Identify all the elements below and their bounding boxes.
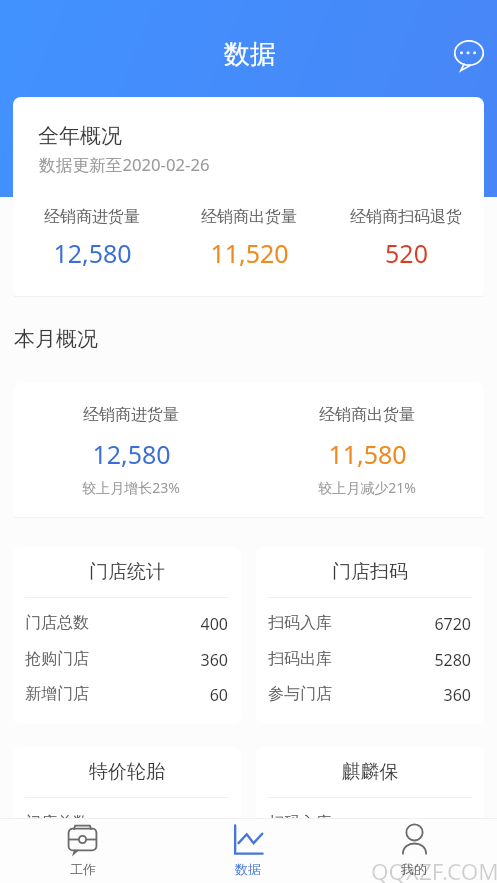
staticText: 全年概况 bbox=[38, 123, 122, 149]
staticText: 11,520 bbox=[210, 236, 289, 270]
staticText: 工作 bbox=[70, 861, 96, 877]
staticText: 数据 bbox=[235, 861, 261, 877]
staticText: 5280 bbox=[256, 849, 471, 871]
staticText: 抢购门店 bbox=[25, 649, 89, 669]
button[interactable]: 数据 bbox=[165, 818, 331, 883]
staticText: 6720 bbox=[256, 613, 471, 635]
staticText: 门店总数 bbox=[25, 813, 89, 833]
button[interactable]: 门店扫码 bbox=[256, 547, 484, 724]
button[interactable]: 特价轮胎 bbox=[13, 747, 241, 883]
staticText: 我的 bbox=[401, 861, 427, 877]
staticText: 经销商进货量 bbox=[44, 207, 140, 227]
staticText: 扫码入库 bbox=[268, 813, 332, 833]
staticText: 360 bbox=[256, 684, 471, 706]
staticText: 经销商出货量 bbox=[201, 207, 297, 227]
button[interactable]: Messages bbox=[447, 33, 491, 77]
button[interactable]: 工作 bbox=[0, 818, 165, 883]
staticText: 较上月减少21% bbox=[318, 478, 416, 497]
staticText: 抢购门店 bbox=[25, 849, 89, 869]
staticText: 门店统计 bbox=[13, 560, 241, 584]
staticText: 12,580 bbox=[92, 437, 171, 471]
staticText: 较上月增长23% bbox=[82, 478, 180, 497]
staticText: 麒麟保 bbox=[256, 760, 484, 784]
staticText: 本月概况 bbox=[14, 326, 98, 352]
staticText: 新增门店 bbox=[25, 684, 89, 704]
button[interactable] bbox=[13, 97, 484, 297]
staticText: 经销商进货量 bbox=[83, 405, 179, 425]
staticText: 门店总数 bbox=[25, 613, 89, 633]
button[interactable]: 我的 bbox=[331, 818, 497, 883]
staticText: 12,580 bbox=[53, 236, 132, 270]
staticText: 经销商扫码退货 bbox=[350, 207, 462, 227]
staticText: 60 bbox=[13, 684, 228, 706]
button[interactable] bbox=[13, 383, 484, 518]
staticText: 5280 bbox=[256, 649, 471, 671]
staticText: 400 bbox=[13, 813, 228, 835]
staticText: 360 bbox=[13, 849, 228, 871]
staticText: 360 bbox=[13, 649, 228, 671]
staticText: 11,580 bbox=[328, 437, 407, 471]
staticText: 数据更新至2020-02-26 bbox=[39, 153, 210, 176]
staticText: 经销商出货量 bbox=[319, 405, 415, 425]
staticText: 特价轮胎 bbox=[13, 760, 241, 784]
staticText: 6720 bbox=[256, 813, 471, 835]
staticText: 520 bbox=[385, 236, 428, 270]
staticText: 数据 bbox=[224, 38, 276, 71]
staticText: QQXZF.COM bbox=[371, 856, 497, 883]
button[interactable]: 麒麟保 bbox=[256, 747, 484, 883]
button[interactable]: 门店统计 bbox=[13, 547, 241, 724]
staticText: 门店扫码 bbox=[256, 560, 484, 584]
staticText: 扫码入库 bbox=[268, 613, 332, 633]
staticText: 扫码出库 bbox=[268, 649, 332, 669]
staticText: 400 bbox=[13, 613, 228, 635]
staticText: 参与门店 bbox=[268, 684, 332, 704]
